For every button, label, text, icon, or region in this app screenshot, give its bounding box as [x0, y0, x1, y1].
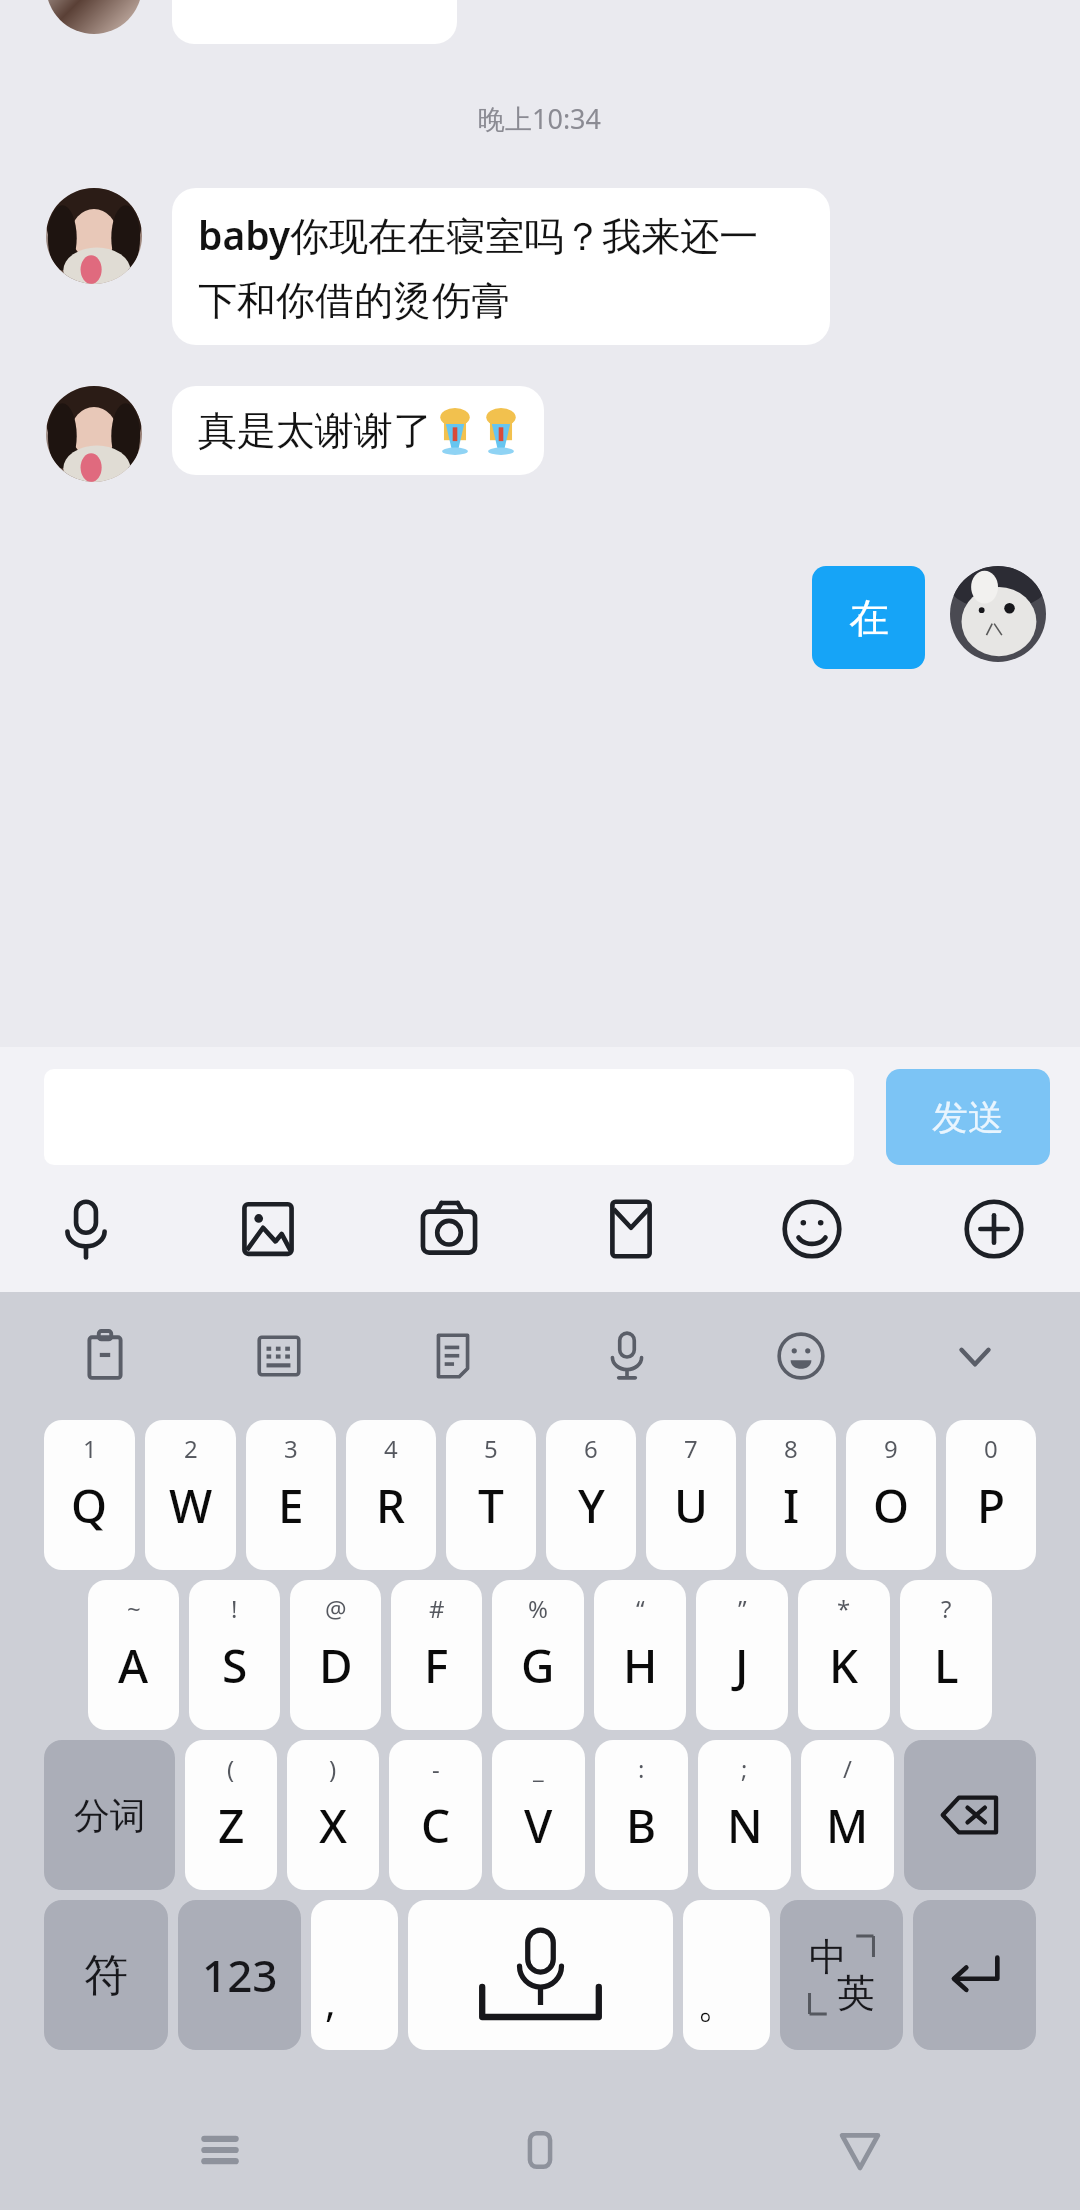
staticText: * [837, 1592, 851, 1625]
staticText: ) [329, 1752, 337, 1785]
button[interactable]: @ [290, 1580, 381, 1730]
staticText: W [169, 1474, 213, 1537]
button[interactable]: / [801, 1740, 894, 1890]
button[interactable]: Backspace [904, 1740, 1036, 1890]
button[interactable]: * [798, 1580, 890, 1730]
staticText: ( [227, 1752, 235, 1785]
button[interactable]: _ [492, 1740, 585, 1890]
staticText: 123 [202, 1945, 278, 2005]
staticText: 8 [784, 1432, 798, 1465]
button[interactable]: ~ [88, 1580, 179, 1730]
staticText: 3 [284, 1432, 298, 1465]
button[interactable]: Space / voice input [408, 1900, 673, 2050]
button[interactable]: Chinese English toggle [780, 1900, 903, 2050]
staticText: I [783, 1474, 800, 1537]
button[interactable]: 真是太谢谢了 [172, 386, 544, 475]
button[interactable]: Clipboard [62, 1313, 148, 1399]
button[interactable]: Enter [913, 1900, 1036, 2050]
button[interactable]: Voice input [584, 1313, 670, 1399]
button[interactable]: Red packet [587, 1185, 675, 1273]
staticText: 在 [849, 593, 889, 643]
staticText: N [727, 1794, 763, 1857]
staticText: @ [325, 1592, 347, 1625]
button[interactable]: baby你现在在寝室吗？我来还一 下和你借的烫伤膏 [172, 188, 830, 345]
button[interactable]: 0 [946, 1420, 1036, 1570]
staticText: H [623, 1634, 658, 1697]
button[interactable]: 在 [812, 566, 925, 669]
button[interactable]: More [950, 1185, 1038, 1273]
button[interactable]: 。 [683, 1900, 770, 2050]
staticText: 2 [184, 1432, 198, 1465]
button[interactable]: Photo [224, 1185, 312, 1273]
button[interactable]: Recent apps [120, 2095, 320, 2205]
staticText: 晚上10:34 [478, 100, 602, 137]
staticText: S [222, 1634, 248, 1697]
staticText: , [325, 1974, 336, 2028]
button[interactable]: 5 [446, 1420, 536, 1570]
button[interactable]: “ [594, 1580, 686, 1730]
staticText: - [432, 1752, 440, 1785]
staticText: A [118, 1634, 149, 1697]
staticText: R [376, 1474, 406, 1537]
staticText: 中 [809, 1933, 847, 1981]
button[interactable]: , [311, 1900, 398, 2050]
staticText: O [873, 1474, 910, 1537]
button[interactable]: 分词 [44, 1740, 175, 1890]
button[interactable]: Hide keyboard [932, 1313, 1018, 1399]
staticText: C [421, 1794, 451, 1857]
button[interactable]: % [492, 1580, 584, 1730]
button[interactable]: Home [440, 2095, 640, 2205]
button[interactable]: 4 [346, 1420, 436, 1570]
staticText: 6 [584, 1432, 598, 1465]
staticText: 发送 [932, 1095, 1004, 1140]
button[interactable]: ! [189, 1580, 280, 1730]
button[interactable]: : [595, 1740, 688, 1890]
button[interactable]: ) [287, 1740, 379, 1890]
staticText: 1 [83, 1432, 97, 1465]
button[interactable]: 6 [546, 1420, 636, 1570]
button[interactable]: 123 [178, 1900, 301, 2050]
staticText: 4 [384, 1432, 398, 1465]
staticText: U [674, 1474, 708, 1537]
button[interactable]: Notes [410, 1313, 496, 1399]
staticText: 真是太谢谢了 [198, 406, 432, 455]
button[interactable]: 7 [646, 1420, 736, 1570]
staticText: 5 [484, 1432, 498, 1465]
staticText: ~ [127, 1592, 141, 1625]
button[interactable]: ? [900, 1580, 992, 1730]
button[interactable]: 8 [746, 1420, 836, 1570]
staticText: ! [231, 1592, 238, 1625]
staticText: M [826, 1794, 869, 1857]
button[interactable]: 3 [246, 1420, 336, 1570]
staticText: B [626, 1794, 657, 1857]
staticText: Q [71, 1474, 108, 1537]
staticText: 符 [84, 1948, 128, 2003]
button[interactable]: 符 [44, 1900, 168, 2050]
button[interactable]: Camera [405, 1185, 493, 1273]
button[interactable]: ; [698, 1740, 791, 1890]
staticText: F [424, 1634, 449, 1697]
staticText: # [429, 1592, 445, 1625]
button[interactable]: - [389, 1740, 482, 1890]
staticText: 英 [837, 1969, 875, 2017]
staticText: “ [636, 1592, 645, 1625]
button[interactable]: 2 [145, 1420, 236, 1570]
staticText: : [638, 1752, 645, 1785]
button[interactable]: Voice message [42, 1185, 130, 1273]
button[interactable]: 9 [846, 1420, 936, 1570]
button[interactable]: ( [185, 1740, 277, 1890]
staticText: V [524, 1794, 553, 1857]
button[interactable]: 发送 [886, 1069, 1050, 1165]
button[interactable]: Emoji [758, 1313, 844, 1399]
button[interactable]: # [391, 1580, 482, 1730]
button[interactable]: Back [760, 2095, 960, 2205]
staticText: 9 [884, 1432, 898, 1465]
button[interactable]: Keyboard [236, 1313, 322, 1399]
button[interactable]: ” [696, 1580, 788, 1730]
staticText: Y [578, 1474, 605, 1537]
button[interactable]: Emoji [768, 1185, 856, 1273]
staticText: E [278, 1474, 304, 1537]
button[interactable]: 1 [44, 1420, 135, 1570]
staticText: L [934, 1634, 959, 1697]
